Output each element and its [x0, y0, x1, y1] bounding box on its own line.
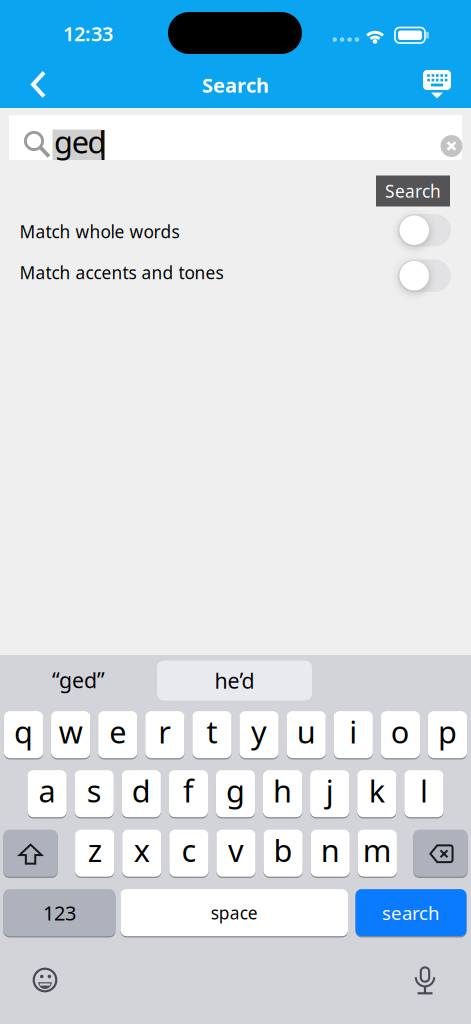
button[interactable]: c [169, 829, 208, 877]
staticText: 123 [43, 899, 76, 926]
button[interactable]: search [355, 888, 466, 937]
staticText: g [226, 770, 245, 811]
staticText: y [251, 711, 267, 752]
button[interactable] [3, 829, 58, 877]
staticText: l [420, 770, 428, 811]
staticText: space [211, 901, 258, 924]
button[interactable] [420, 66, 454, 102]
staticText: t [206, 711, 217, 752]
staticText: q [14, 711, 33, 752]
button[interactable]: q [4, 710, 43, 759]
button[interactable] [0, 0, 60, 108]
staticText: z [88, 830, 102, 870]
button[interactable]: y [239, 710, 279, 759]
staticText: he’d [214, 666, 254, 695]
staticText: m [363, 830, 392, 870]
staticText: h [273, 770, 292, 811]
staticText: “ged” [52, 666, 105, 694]
button[interactable] [440, 135, 462, 157]
button[interactable] [398, 259, 451, 292]
button[interactable]: v [216, 829, 256, 877]
staticText: Match whole words [19, 220, 179, 243]
button[interactable]: m [358, 829, 397, 877]
staticText: search [382, 900, 440, 925]
button[interactable]: j [310, 769, 349, 818]
staticText: v [228, 830, 244, 870]
button[interactable]: b [263, 829, 303, 877]
button[interactable]: i [334, 710, 373, 759]
staticText: b [274, 830, 293, 870]
staticText: Search [202, 72, 269, 98]
staticText: r [158, 711, 171, 752]
staticText: k [369, 770, 385, 811]
button[interactable]: l [404, 769, 443, 818]
button[interactable]: p [428, 710, 467, 759]
button[interactable]: t [192, 710, 231, 759]
button[interactable]: k [357, 769, 396, 818]
button[interactable]: he’d [157, 660, 312, 700]
staticText: s [87, 770, 102, 811]
staticText: Match accents and tones [19, 261, 223, 284]
button[interactable]: n [311, 829, 350, 877]
button[interactable]: 123 [3, 888, 115, 937]
staticText: p [438, 711, 457, 752]
button[interactable]: z [75, 829, 114, 877]
staticText: f [183, 770, 194, 811]
staticText: Search [385, 179, 441, 202]
button[interactable]: s [75, 769, 114, 818]
button[interactable]: a [27, 769, 67, 818]
button[interactable]: d [122, 769, 161, 818]
button[interactable]: f [169, 769, 208, 818]
button[interactable]: w [51, 710, 90, 759]
staticText: j [326, 770, 334, 811]
button[interactable]: o [381, 710, 420, 759]
button[interactable] [413, 829, 468, 877]
button[interactable]: h [263, 769, 302, 818]
staticText: n [321, 830, 340, 870]
staticText: 12:33 [63, 20, 113, 47]
button[interactable]: space [120, 888, 348, 937]
staticText: e [109, 711, 126, 752]
button[interactable]: Search [376, 175, 450, 206]
button[interactable]: g [216, 769, 255, 818]
staticText: o [391, 711, 410, 752]
staticText: c [181, 830, 196, 870]
button[interactable] [32, 967, 58, 993]
staticText: d [132, 770, 151, 811]
staticText: x [134, 830, 150, 870]
staticText: w [59, 711, 83, 752]
button[interactable] [412, 964, 438, 995]
button[interactable]: e [98, 710, 137, 759]
button[interactable]: u [287, 710, 326, 759]
staticText: a [39, 770, 56, 811]
button[interactable]: r [145, 710, 184, 759]
button[interactable] [398, 214, 451, 246]
button[interactable]: x [122, 829, 161, 877]
staticText: u [297, 711, 316, 752]
staticText: ged [54, 121, 106, 162]
staticText: i [349, 711, 357, 752]
